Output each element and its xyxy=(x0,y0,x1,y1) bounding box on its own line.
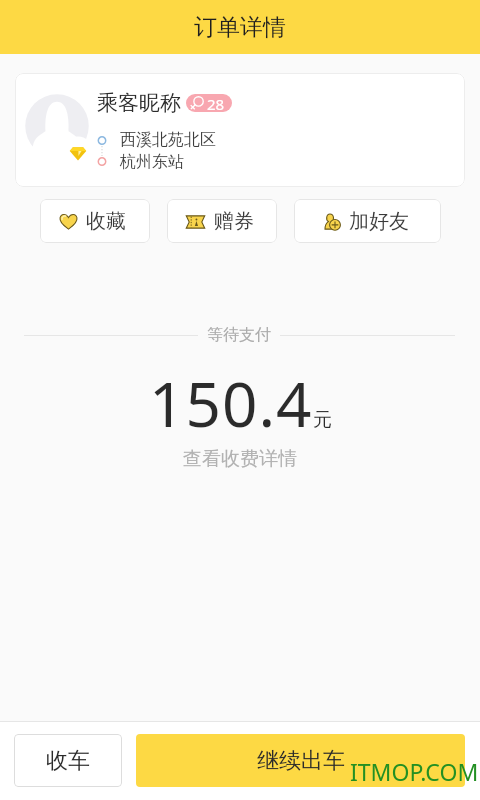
staticText: 收藏 xyxy=(86,209,126,234)
staticText: 赠券 xyxy=(214,209,254,234)
button[interactable]: 收藏 xyxy=(40,199,150,243)
staticText: 继续出车 xyxy=(257,747,345,775)
staticText: 订单详情 xyxy=(194,13,286,42)
staticText: ITMOP.COM xyxy=(350,756,479,787)
staticText: 加好友 xyxy=(349,209,409,234)
staticText: 28 xyxy=(207,94,225,112)
button[interactable]: 继续出车 xyxy=(136,734,465,787)
button[interactable]: 收车 xyxy=(14,734,122,787)
staticText: 杭州东站 xyxy=(120,152,184,172)
button[interactable]: 赠券 xyxy=(167,199,277,243)
staticText: 150.4 xyxy=(149,361,313,445)
button[interactable]: 乘客昵称 xyxy=(15,73,465,187)
staticText: 等待支付 xyxy=(207,325,271,345)
staticText: 元 xyxy=(313,408,332,432)
staticText: 乘客昵称 xyxy=(97,90,181,116)
button[interactable]: 加好友 xyxy=(294,199,441,243)
staticText: 收车 xyxy=(46,747,90,775)
staticText: 西溪北苑北区 xyxy=(120,130,216,150)
button[interactable]: 查看收费详情 xyxy=(173,445,307,473)
